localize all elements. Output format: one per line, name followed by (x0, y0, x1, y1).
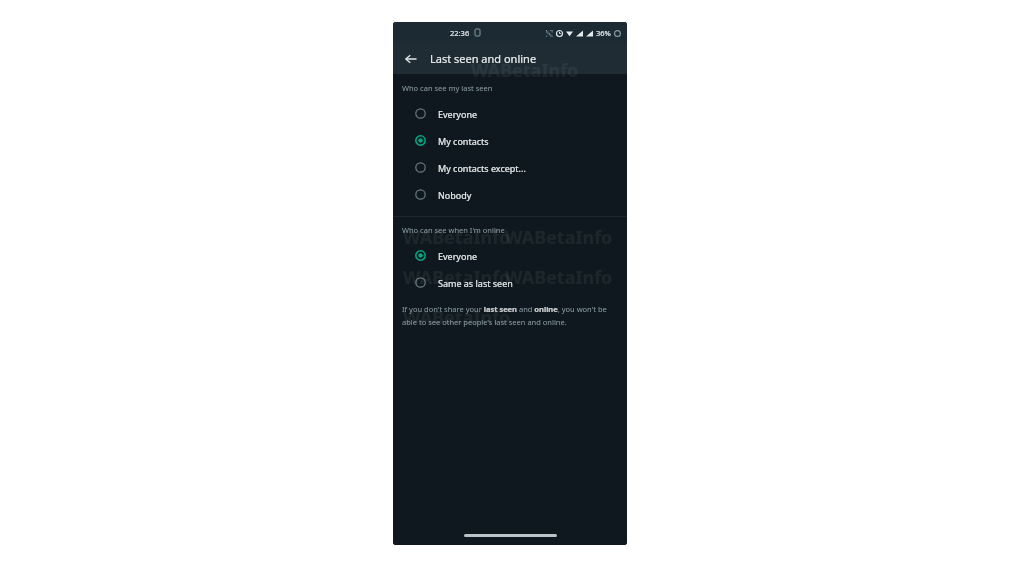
button[interactable]: Nobody (393, 181, 627, 208)
staticText: Same as last seen (438, 277, 513, 289)
staticText: WABetaInfo (505, 265, 613, 290)
staticText: WABetaInfo (505, 225, 613, 250)
staticText: WABetaInfo (403, 265, 511, 290)
button[interactable]: Everyone (393, 100, 627, 127)
staticText: WABetaInfo (403, 225, 511, 250)
staticText: Nobody (438, 189, 472, 201)
staticText: Last seen and online (430, 51, 537, 66)
button[interactable]: Same as last seen (393, 269, 627, 296)
staticText: Who can see when I'm online (402, 225, 505, 235)
button[interactable]: My contacts except... (393, 154, 627, 181)
staticText: Everyone (438, 108, 478, 120)
button[interactable]: My contacts (393, 127, 627, 154)
button[interactable]: Everyone (393, 242, 627, 269)
staticText: 22:36 (450, 28, 470, 38)
staticText: My contacts (438, 135, 489, 147)
staticText: If you don't share your last seen and on… (402, 304, 614, 327)
staticText: WABetaInfo (471, 58, 579, 83)
button[interactable]: Back (400, 48, 422, 70)
staticText: Everyone (438, 250, 478, 262)
staticText: Who can see my last seen (402, 83, 493, 93)
staticText: My contacts except... (438, 162, 526, 174)
staticText: WABetaInfo (403, 305, 511, 330)
staticText: 36% (596, 28, 611, 38)
